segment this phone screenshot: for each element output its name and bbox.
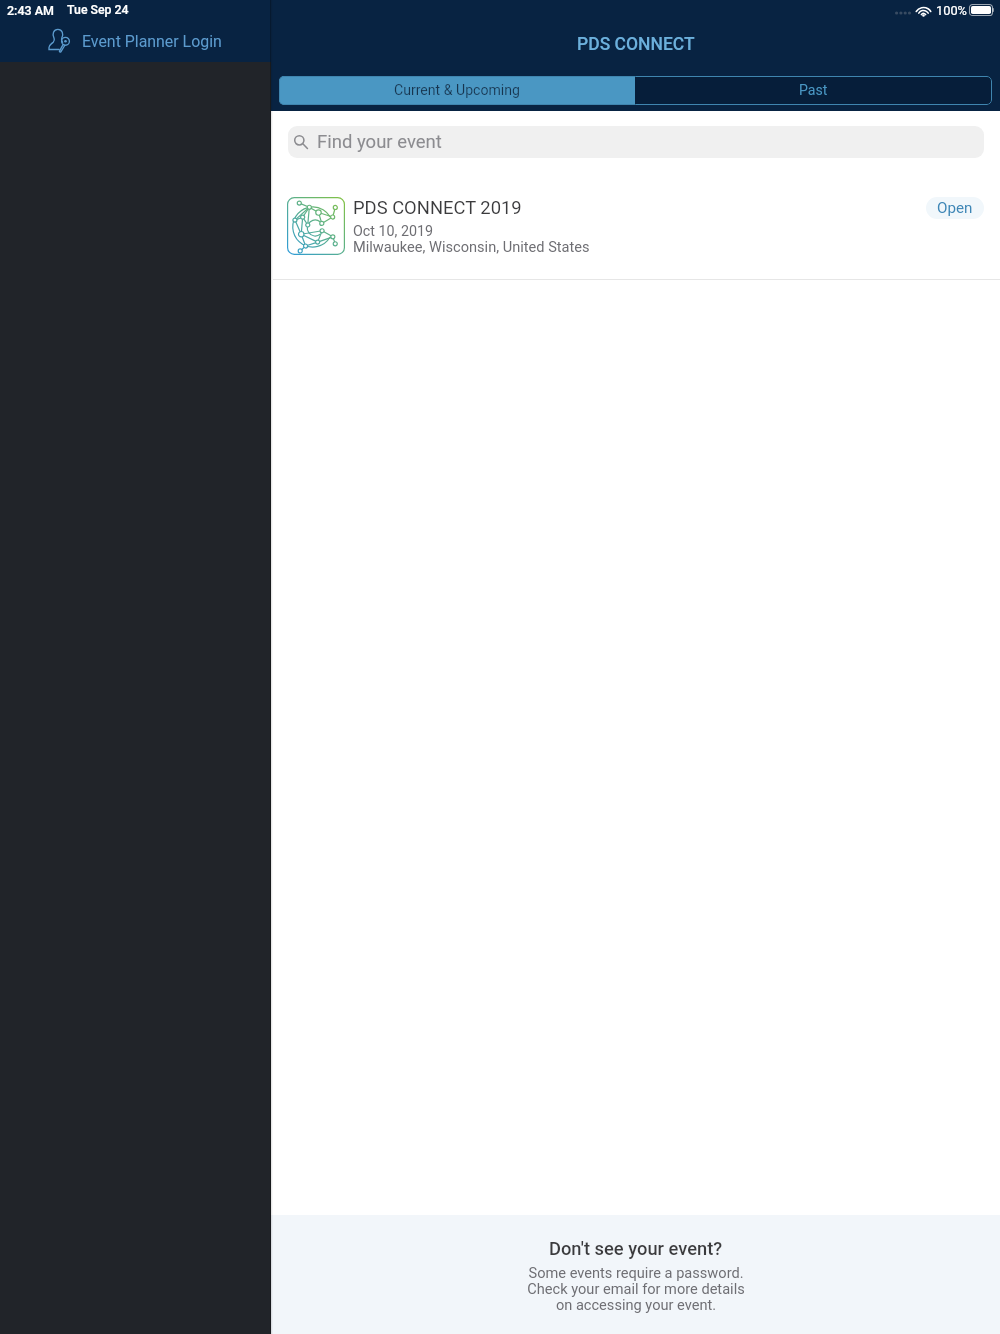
staticText: Don't see your event?: [549, 1238, 723, 1259]
other: Event Planner Login: [48, 26, 72, 54]
button[interactable]: PDS CONNECT 2019: [271, 158, 1000, 279]
staticText: Oct 10, 2019: [353, 223, 434, 240]
staticText: 2:43 AM: [7, 3, 55, 18]
button[interactable]: Past: [635, 76, 992, 105]
staticText: 100%: [936, 3, 967, 18]
staticText: Milwaukee, Wisconsin, United States: [353, 238, 590, 255]
staticText: PDS CONNECT: [577, 34, 695, 55]
staticText: PDS CONNECT 2019: [353, 197, 522, 219]
button[interactable]: Find your event: [288, 126, 984, 158]
button[interactable]: Event Planner Login: [44, 25, 226, 57]
staticText: Tue Sep 24: [67, 3, 129, 17]
staticText: Past: [799, 82, 828, 99]
staticText: Open: [937, 199, 973, 217]
staticText: Some events require a password. Check yo…: [527, 1264, 745, 1313]
button[interactable]: Open: [926, 197, 984, 219]
button[interactable]: Current & Upcoming: [279, 76, 635, 105]
staticText: Event Planner Login: [82, 32, 222, 51]
staticText: Current & Upcoming: [394, 82, 520, 99]
staticText: Find your event: [317, 131, 442, 153]
